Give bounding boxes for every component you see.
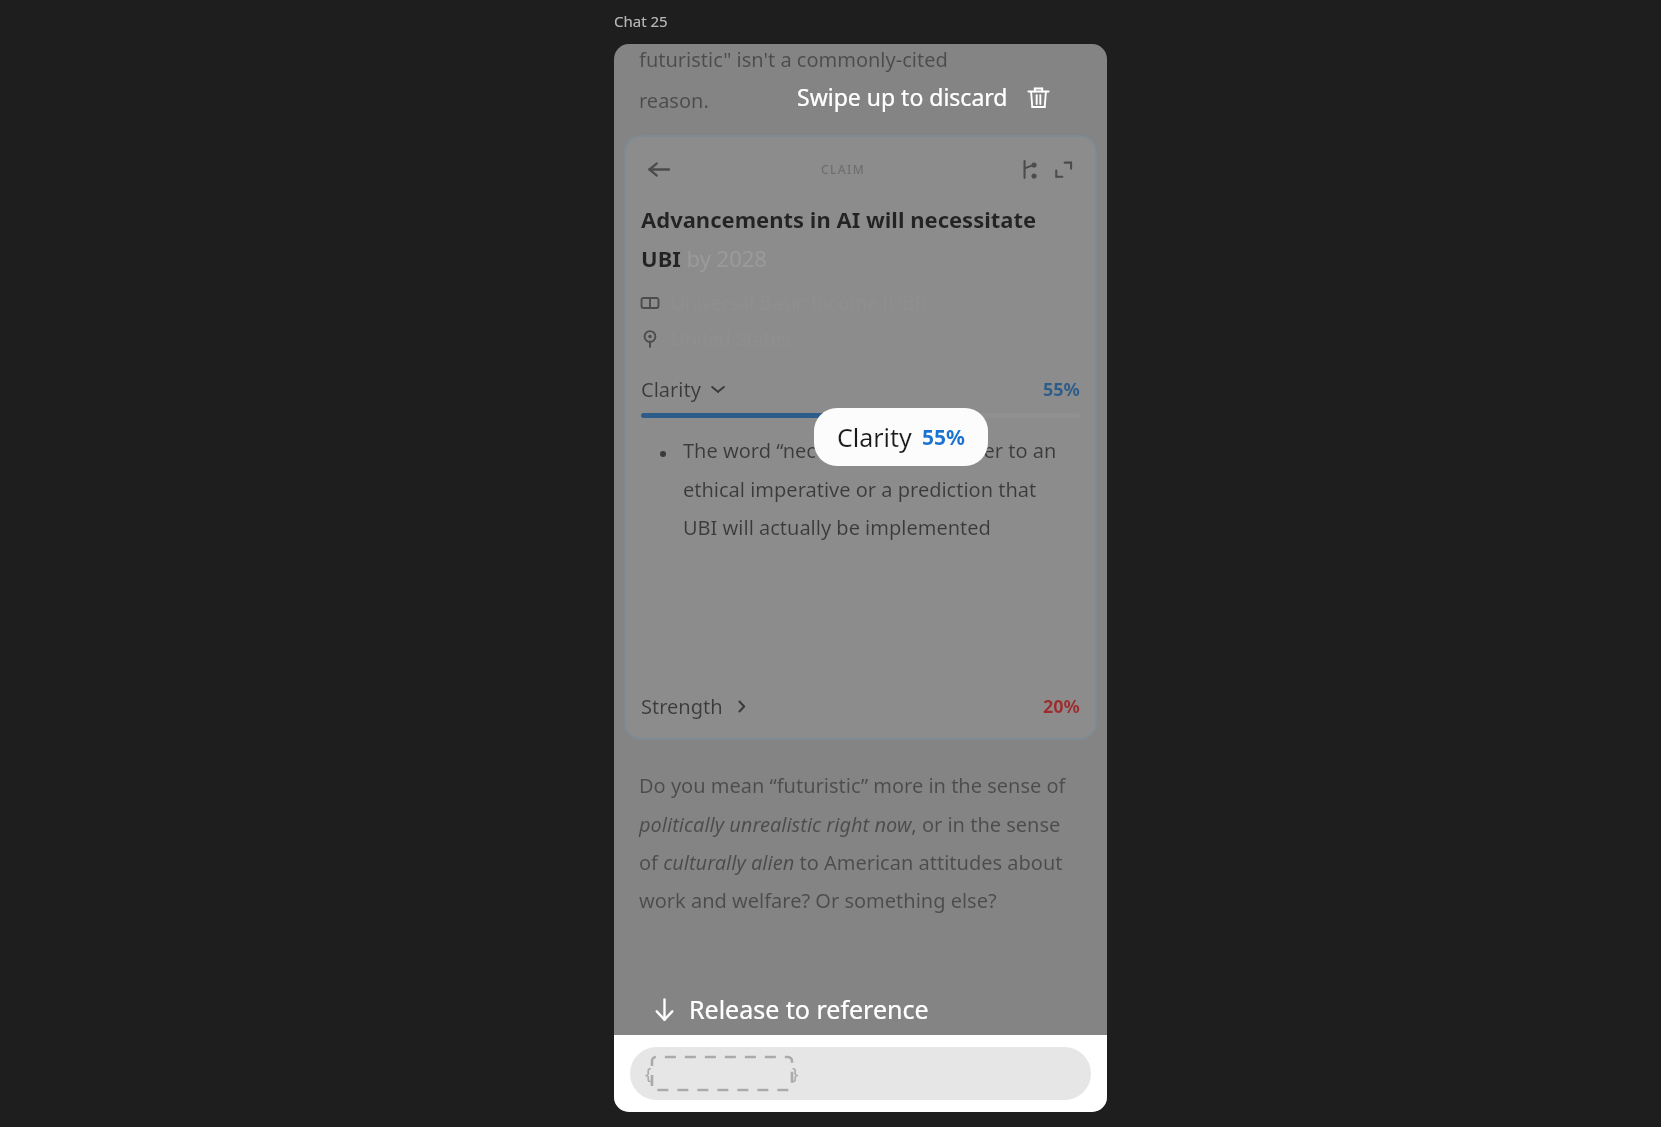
button[interactable]: Back — [641, 152, 675, 186]
button[interactable]: Expand — [1046, 152, 1080, 186]
staticText: Clarity — [837, 420, 912, 454]
staticText: 55% — [922, 423, 965, 452]
staticText: 20% — [1043, 694, 1080, 719]
staticText: reason. — [639, 87, 709, 114]
staticText: Chat 25 — [614, 11, 668, 31]
staticText: Release to reference — [689, 992, 929, 1026]
staticText: Advancements in AI will necessitate UBI … — [641, 204, 1080, 273]
button[interactable]: Clarity — [814, 408, 988, 466]
staticText: Swipe up to discard — [797, 81, 1008, 112]
button[interactable]: Release to reference — [651, 992, 929, 1026]
button[interactable]: Branch — [1012, 152, 1046, 186]
button[interactable]: Clarity — [641, 372, 1080, 406]
other: Discard — [1025, 84, 1051, 110]
staticText: { — [645, 1062, 652, 1085]
staticText: Clarity — [641, 376, 701, 403]
staticText: futuristic" isn't a commonly-cited — [639, 46, 948, 73]
staticText: Strength — [641, 693, 723, 720]
button[interactable]: { — [630, 1047, 1091, 1100]
staticText: } — [792, 1062, 799, 1085]
staticText: 55% — [1043, 377, 1080, 402]
button[interactable]: Swipe up to discard — [797, 81, 1051, 112]
staticText: The word “necessitate” could refer to an… — [683, 437, 1070, 541]
staticText: CLAIM — [821, 161, 866, 177]
other: Release to reference — [651, 996, 678, 1023]
staticText: Do you mean “futuristic” more in the sen… — [639, 772, 1082, 914]
button[interactable]: Strength — [641, 685, 1080, 727]
